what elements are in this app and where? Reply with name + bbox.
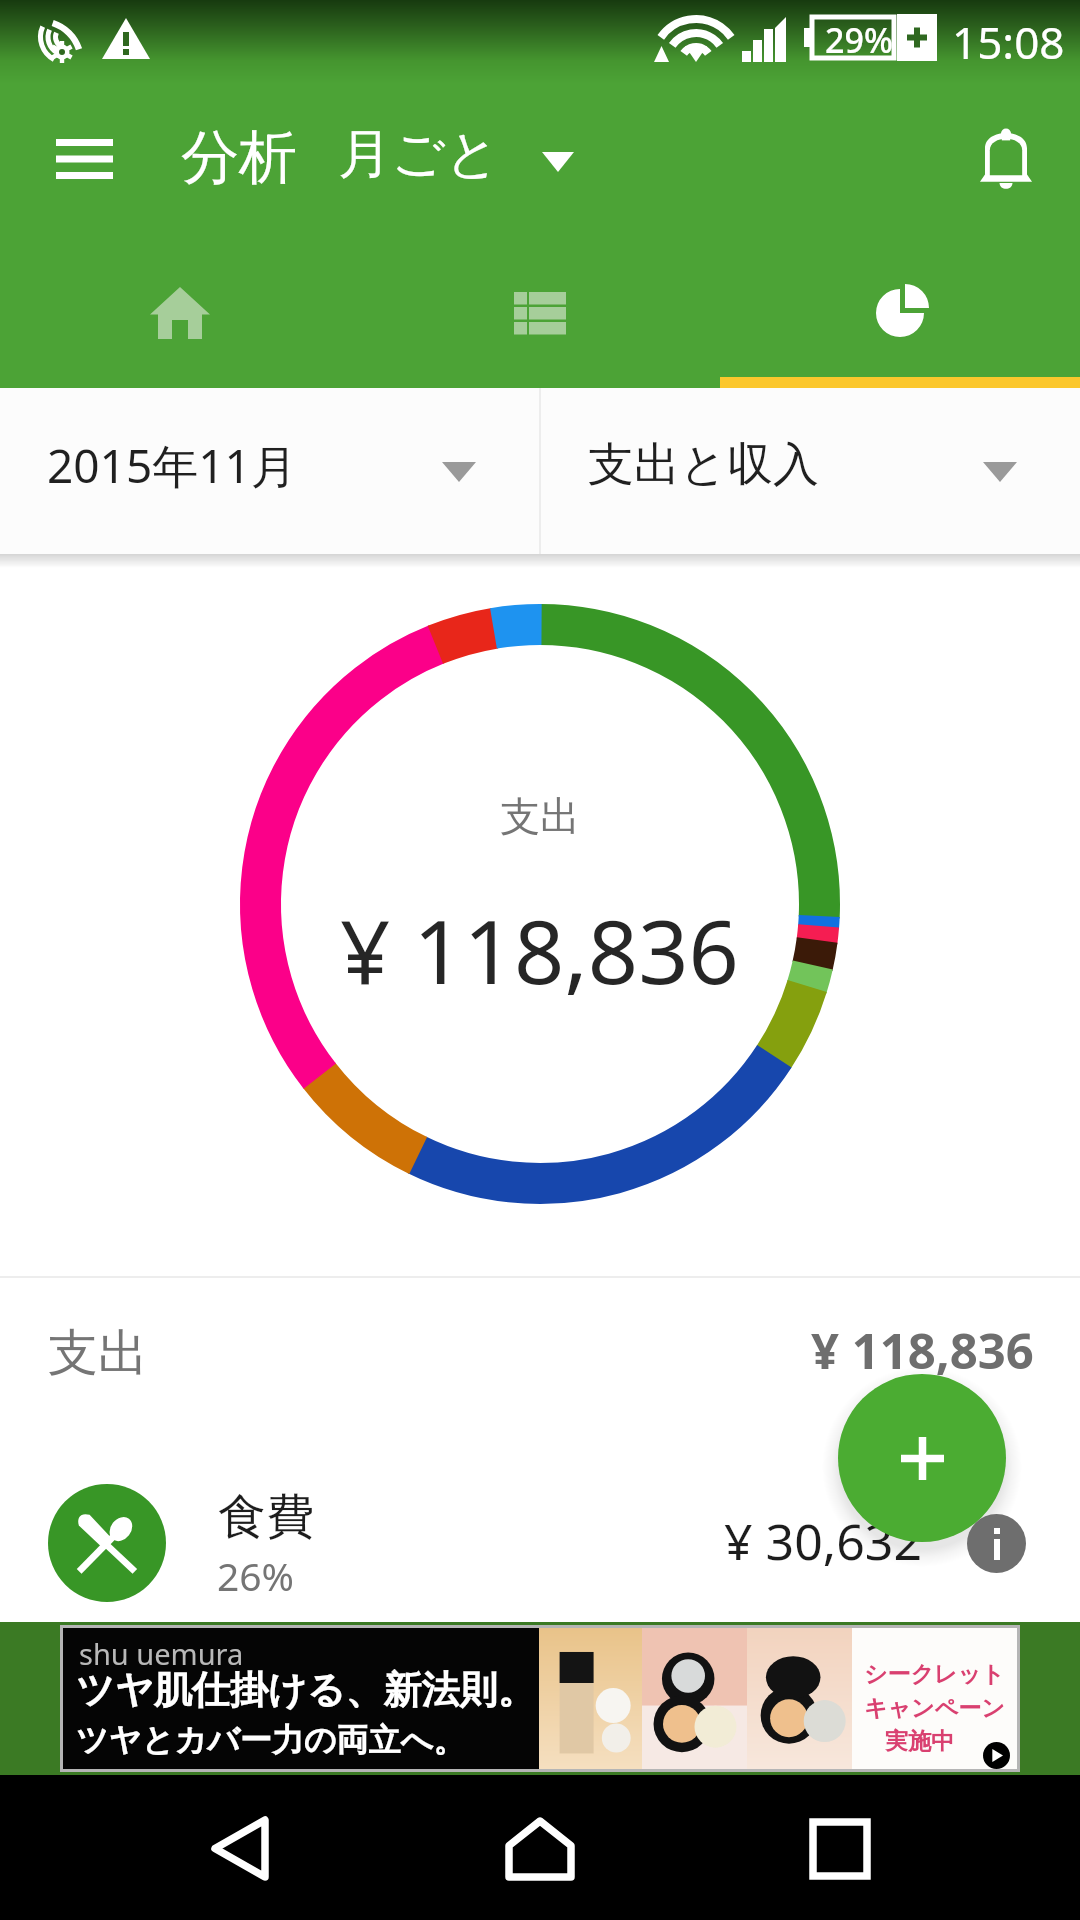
staticText: 分析 [181,121,297,194]
staticText: 食費 [218,1487,314,1547]
staticText: ¥ 30,632 [724,1507,922,1575]
staticText: 26% [217,1549,295,1602]
staticText: 支出と収入 [588,436,820,494]
staticText: shu uemura [79,1634,244,1673]
button[interactable]: Info [967,1514,1026,1573]
button[interactable]: Home [0,234,360,388]
button[interactable]: List [360,234,720,388]
staticText: 支出 [48,1322,148,1385]
staticText: ¥ 118,836 [340,890,739,1010]
staticText: 2015年11月 [47,434,297,497]
staticText: 支出 [500,791,580,841]
staticText: 月ごと [338,121,500,188]
staticText: シークレット [864,1660,1005,1689]
button[interactable]: Home [480,1777,600,1920]
button[interactable]: Back [180,1777,300,1920]
staticText: 実施中 [885,1727,954,1756]
staticText: 29% [825,17,893,63]
staticText: ツヤ肌仕掛ける、新法則。 [76,1666,536,1714]
staticText: ツヤとカバー力の両立へ。 [76,1720,466,1760]
staticText: キャンペーン [864,1694,1005,1723]
button[interactable]: Add [838,1374,1006,1542]
button[interactable]: Recents [780,1777,900,1920]
button[interactable]: Analysis [720,234,1080,388]
button[interactable]: 支出と収入 [541,388,1080,554]
button[interactable]: Menu [36,122,132,196]
staticText: 15:08 [952,12,1065,72]
button[interactable]: Notifications [958,111,1054,207]
staticText: ¥ 118,836 [811,1317,1034,1384]
button[interactable]: 2015年11月 [0,388,539,554]
